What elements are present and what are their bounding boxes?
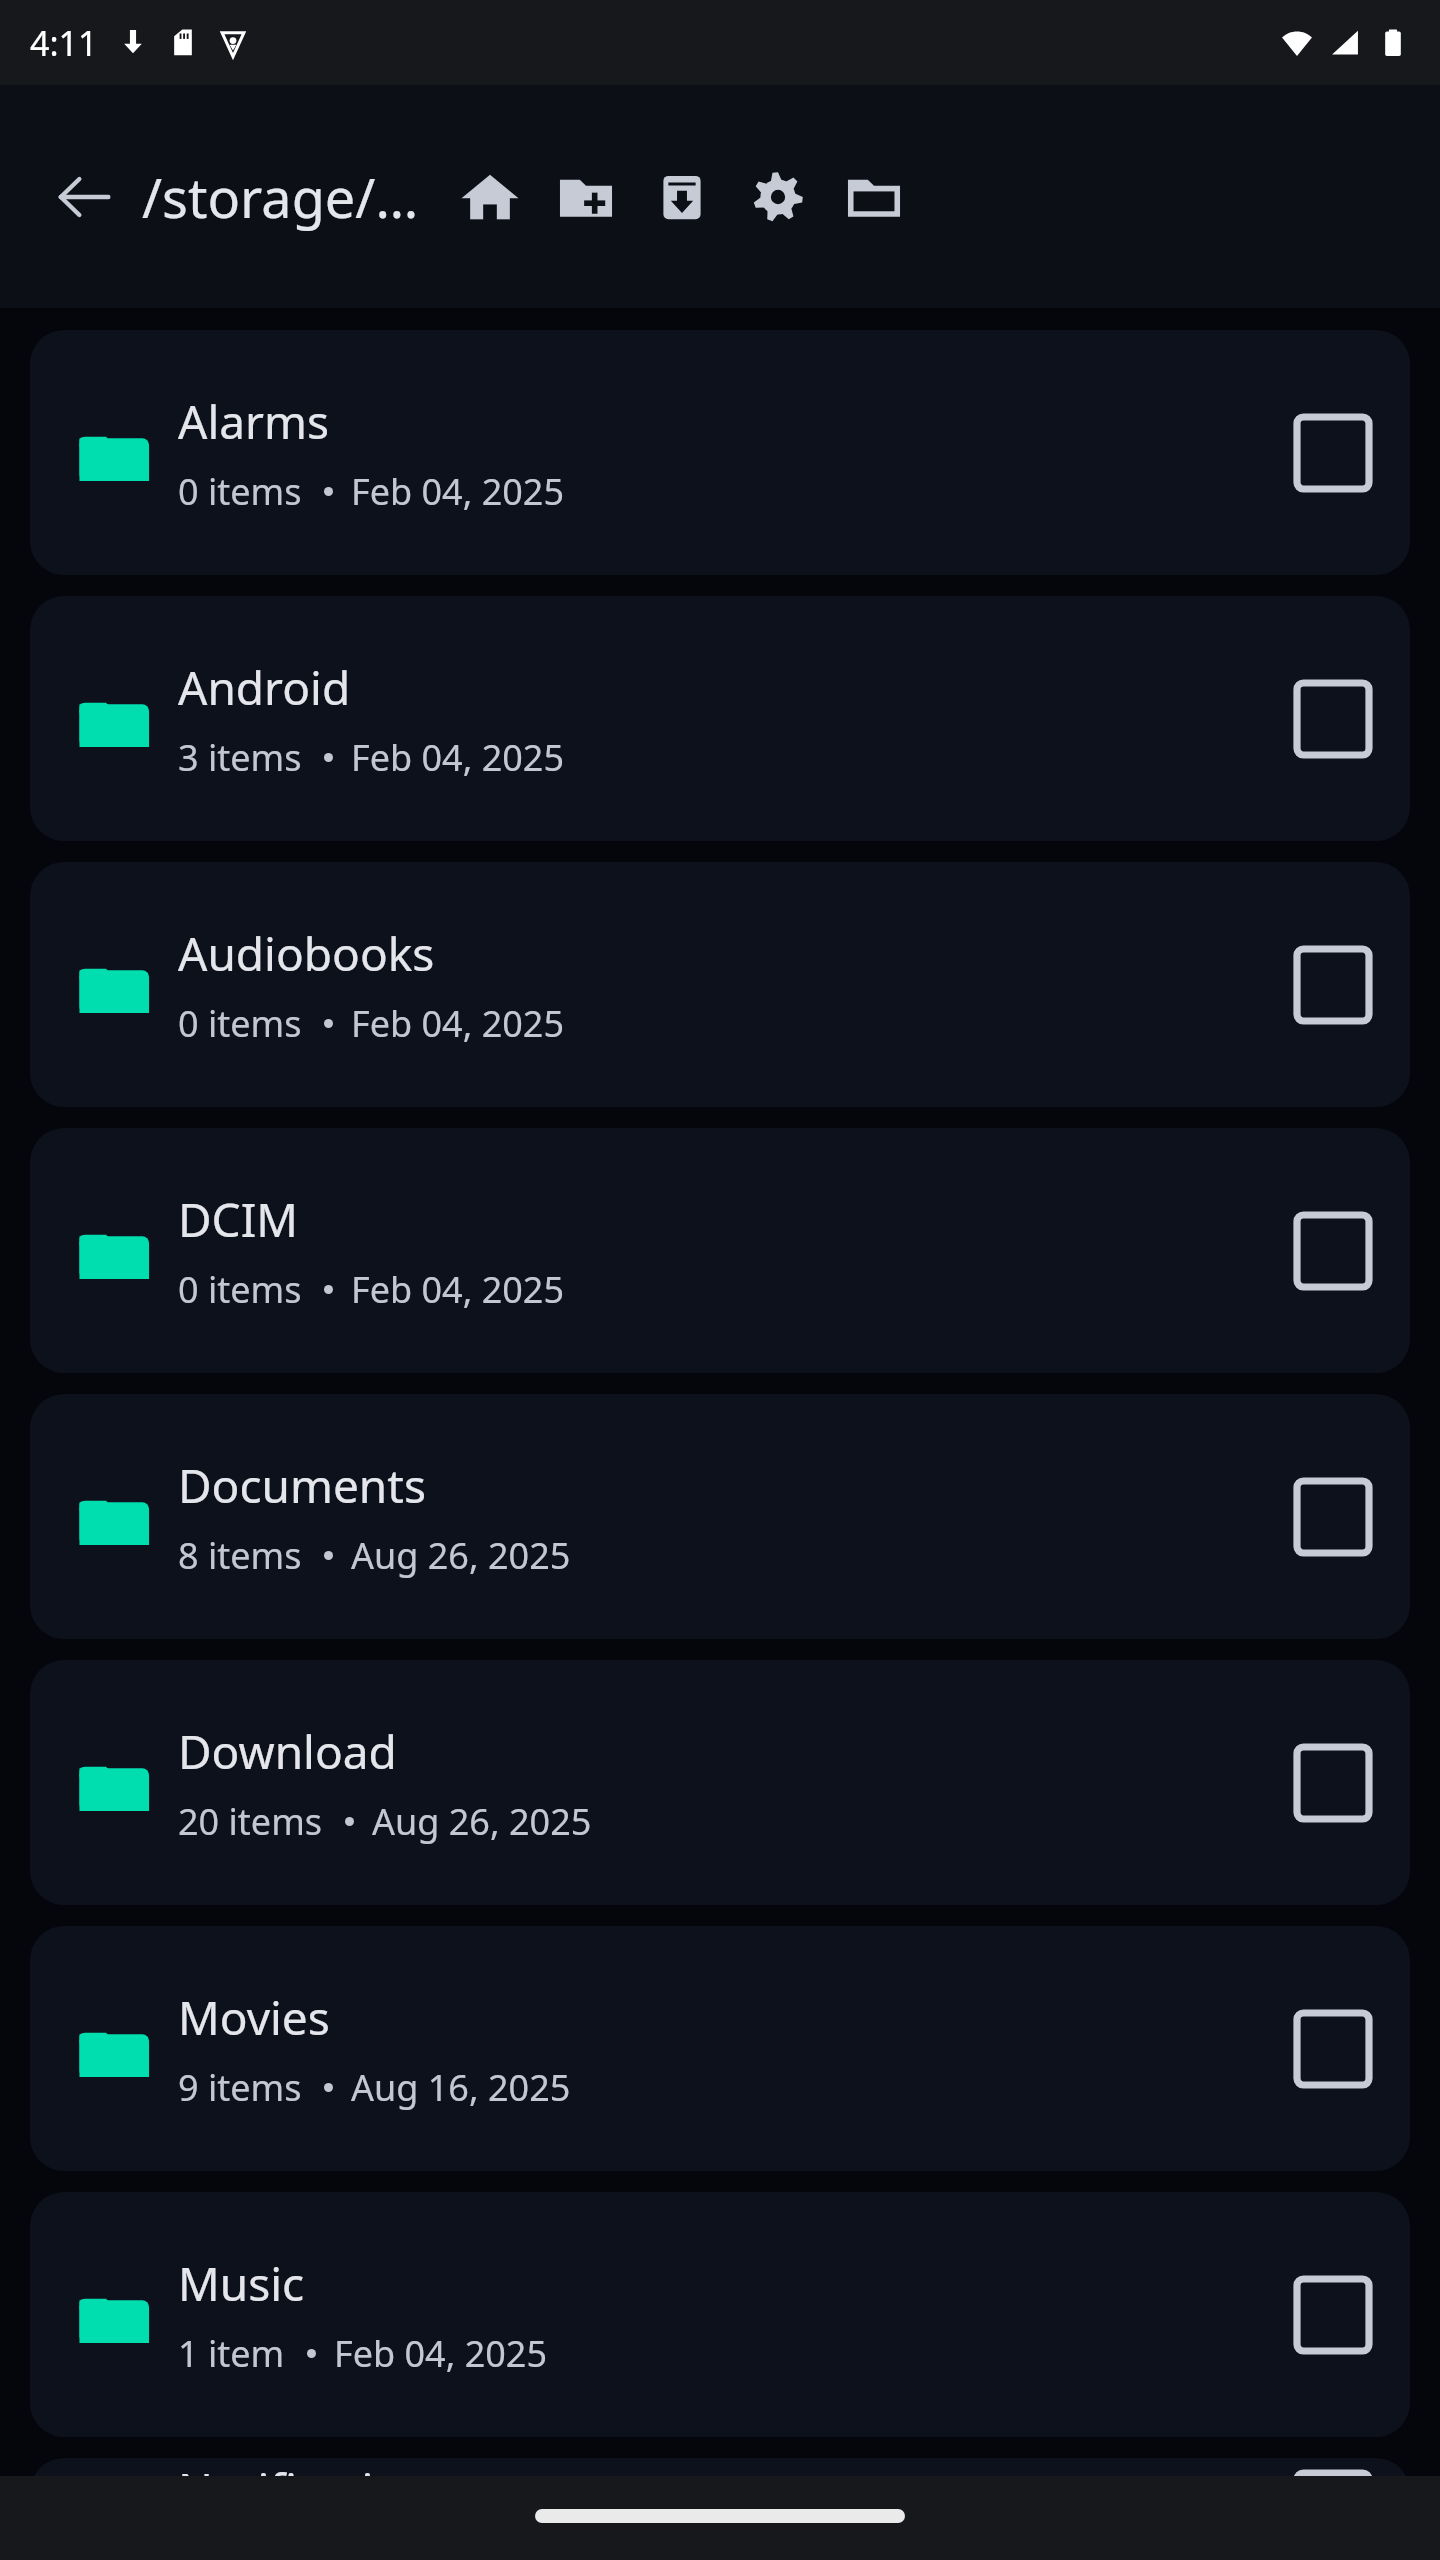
button[interactable]: Select DCIM (1278, 1196, 1388, 1306)
staticText: 20 items (178, 1797, 323, 1846)
staticText: 3 items (178, 733, 302, 782)
button[interactable]: Notifications (30, 2458, 1410, 2560)
staticText: Aug 26, 2025 (372, 1797, 592, 1846)
staticText: Android (178, 656, 351, 719)
button[interactable]: Music (30, 2192, 1410, 2437)
button[interactable]: Home (442, 149, 538, 245)
staticText: Aug 26, 2025 (351, 1531, 571, 1580)
staticText: 0 items (178, 999, 302, 1048)
button[interactable]: Select Alarms (1278, 398, 1388, 508)
button[interactable]: New folder (538, 149, 634, 245)
button[interactable]: Archive (634, 149, 730, 245)
staticText: Feb 04, 2025 (334, 2329, 548, 2378)
button[interactable]: Select Download (1278, 1728, 1388, 1838)
button[interactable]: Select Audiobooks (1278, 930, 1388, 1040)
button[interactable]: Documents (30, 1394, 1410, 1639)
staticText: Documents (178, 1454, 426, 1517)
button[interactable]: DCIM (30, 1128, 1410, 1373)
staticText: Feb 04, 2025 (351, 999, 565, 1048)
staticText: Download (178, 1720, 397, 1783)
button[interactable]: Back (36, 149, 132, 245)
staticText: Aug 16, 2025 (351, 2063, 571, 2112)
staticText: 8 items (178, 1531, 302, 1580)
staticText: 4:11 (30, 20, 98, 66)
staticText: 0 items (178, 1265, 302, 1314)
button[interactable]: Select Movies (1278, 1994, 1388, 2104)
staticText: 9 items (178, 2063, 302, 2112)
staticText: Audiobooks (178, 922, 435, 985)
button[interactable]: Settings (730, 149, 826, 245)
staticText: /storage/… (142, 160, 442, 234)
button[interactable]: Alarms (30, 330, 1410, 575)
staticText: Feb 04, 2025 (351, 1265, 565, 1314)
button[interactable]: Open folder (826, 149, 922, 245)
staticText: 0 items (178, 467, 302, 516)
button[interactable]: Select Android (1278, 664, 1388, 774)
button[interactable]: Download (30, 1660, 1410, 1905)
staticText: Movies (178, 1986, 330, 2049)
staticText: Feb 04, 2025 (351, 733, 565, 782)
button[interactable]: Android (30, 596, 1410, 841)
staticText: Music (178, 2252, 305, 2315)
button[interactable]: Select Notifications (1278, 2458, 1388, 2560)
staticText: Feb 04, 2025 (351, 467, 565, 516)
button[interactable]: Select Documents (1278, 1462, 1388, 1572)
staticText: 1 item (178, 2329, 285, 2378)
staticText: DCIM (178, 1188, 298, 1251)
staticText: Notifications (178, 2458, 452, 2521)
button[interactable]: Select Music (1278, 2260, 1388, 2370)
button[interactable]: Audiobooks (30, 862, 1410, 1107)
button[interactable]: Movies (30, 1926, 1410, 2171)
staticText: Alarms (178, 390, 330, 453)
